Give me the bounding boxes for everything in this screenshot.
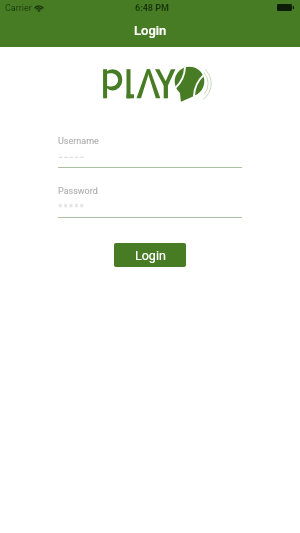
staticText: Username (58, 136, 99, 147)
other: Battery (277, 4, 294, 11)
staticText: Login (134, 23, 167, 38)
button[interactable]: Password (58, 186, 242, 218)
staticText: Password (58, 186, 98, 197)
other: Wi-Fi (34, 5, 44, 12)
staticText: Login (135, 248, 166, 263)
button[interactable]: Username (58, 136, 242, 168)
other: Play logo (103, 66, 212, 103)
staticText: 6:48 PM (135, 3, 169, 14)
button[interactable]: Login (114, 243, 186, 267)
staticText: Carrier (5, 3, 32, 14)
